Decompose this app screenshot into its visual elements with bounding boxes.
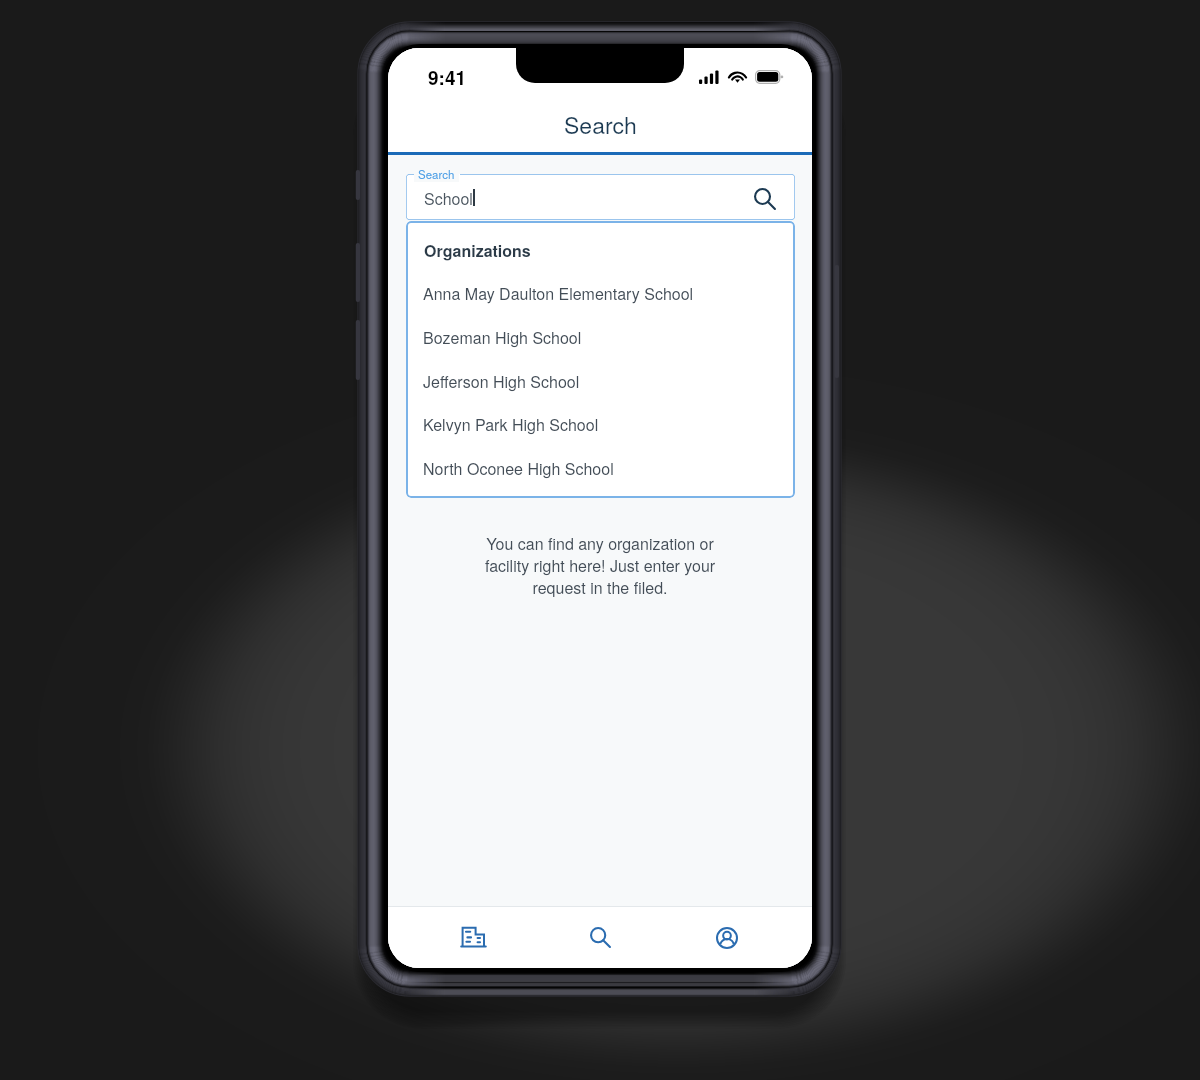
- staticText: Bozeman High School: [423, 326, 582, 349]
- button[interactable]: Organizations: [433, 907, 513, 968]
- button[interactable]: Anna May Daulton Elementary School: [406, 271, 795, 315]
- button[interactable]: North Oconee High School: [406, 446, 795, 490]
- staticText: North Oconee High School: [423, 457, 614, 480]
- button[interactable]: Jefferson High School: [406, 359, 795, 403]
- staticText: Kelvyn Park High School: [423, 413, 599, 436]
- button[interactable]: Profile: [687, 907, 767, 968]
- button[interactable]: Search: [560, 907, 640, 968]
- button[interactable]: Kelvyn Park High School: [406, 402, 795, 446]
- staticText: Search: [418, 166, 455, 182]
- staticText: 9:41: [428, 64, 467, 91]
- staticText: Jefferson High School: [423, 370, 580, 393]
- staticText: Organizations: [424, 239, 531, 262]
- button[interactable]: Search: [744, 178, 786, 220]
- button[interactable]: Bozeman High School: [406, 315, 795, 359]
- staticText: You can find any organization or facilit…: [477, 532, 723, 599]
- staticText: School: [424, 187, 473, 210]
- staticText: Anna May Daulton Elementary School: [423, 282, 694, 305]
- button[interactable]: School: [406, 174, 795, 220]
- staticText: Search: [564, 108, 637, 141]
